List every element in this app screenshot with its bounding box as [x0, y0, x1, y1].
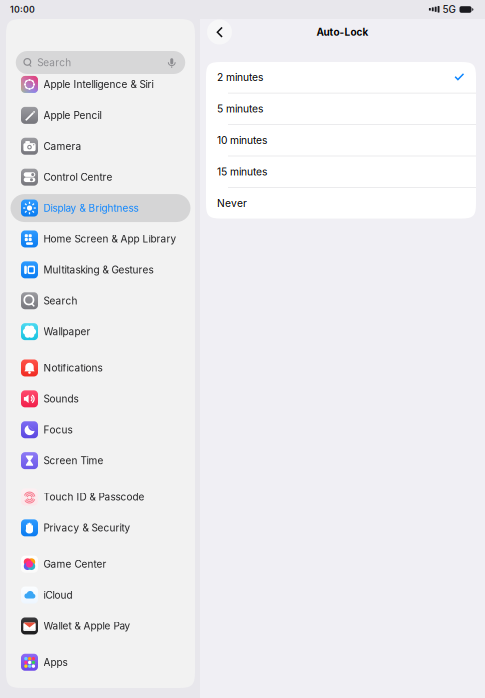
- staticText: Apple Intelligence & Siri: [43, 78, 153, 90]
- staticText: Sounds: [43, 393, 78, 405]
- button[interactable]: Wallet & Apple Pay: [10, 612, 190, 640]
- button[interactable]: Wallpaper: [10, 318, 190, 346]
- button[interactable]: Touch ID & Passcode: [10, 483, 190, 511]
- button[interactable]: 2 minutes: [206, 62, 476, 93]
- staticText: Control Centre: [43, 171, 112, 183]
- button[interactable]: Never: [206, 188, 476, 219]
- staticText: Wallet & Apple Pay: [43, 620, 130, 632]
- staticText: Privacy & Security: [43, 522, 130, 534]
- button[interactable]: Notifications: [10, 354, 190, 382]
- button[interactable]: 10 minutes: [206, 125, 476, 156]
- button[interactable]: Multitasking & Gestures: [10, 256, 190, 284]
- staticText: 5G: [442, 3, 455, 15]
- staticText: Apple Pencil: [43, 109, 101, 121]
- staticText: Auto-Lock: [316, 26, 368, 38]
- button[interactable]: 15 minutes: [206, 156, 476, 188]
- staticText: Search: [43, 295, 77, 307]
- staticText: Apps: [43, 656, 67, 668]
- staticText: Notifications: [43, 362, 102, 374]
- button[interactable]: Apple Pencil: [10, 101, 190, 129]
- button[interactable]: Back: [207, 19, 232, 44]
- staticText: Display & Brightness: [43, 202, 138, 214]
- button[interactable]: Apps: [10, 648, 190, 676]
- staticText: Multitasking & Gestures: [43, 264, 153, 276]
- button[interactable]: Apple Intelligence & Siri: [10, 70, 190, 98]
- staticText: iCloud: [43, 589, 72, 601]
- staticText: Touch ID & Passcode: [43, 491, 144, 503]
- staticText: Home Screen & App Library: [43, 233, 176, 245]
- button[interactable]: Game Center: [10, 550, 190, 578]
- button[interactable]: Camera: [10, 132, 190, 160]
- button[interactable]: Search: [10, 287, 190, 315]
- staticText: Never: [217, 197, 247, 209]
- staticText: Wallpaper: [43, 326, 90, 338]
- staticText: Screen Time: [43, 455, 103, 467]
- staticText: Game Center: [43, 558, 106, 570]
- staticText: 10:00: [10, 4, 35, 15]
- button[interactable]: Screen Time: [10, 447, 190, 475]
- button[interactable]: Home Screen & App Library: [10, 225, 190, 253]
- button[interactable]: iCloud: [10, 581, 190, 609]
- staticText: 2 minutes: [217, 71, 263, 84]
- button[interactable]: Display & Brightness: [10, 194, 190, 222]
- button[interactable]: Sounds: [10, 385, 190, 413]
- staticText: 5 minutes: [217, 103, 263, 115]
- staticText: 10 minutes: [217, 134, 267, 146]
- staticText: Search: [37, 56, 71, 69]
- button[interactable]: Privacy & Security: [10, 514, 190, 542]
- staticText: 15 minutes: [217, 165, 267, 178]
- button[interactable]: 5 minutes: [206, 93, 476, 125]
- staticText: Camera: [43, 140, 81, 152]
- button[interactable]: Focus: [10, 416, 190, 444]
- button[interactable]: Control Centre: [10, 163, 190, 191]
- staticText: Focus: [43, 424, 72, 436]
